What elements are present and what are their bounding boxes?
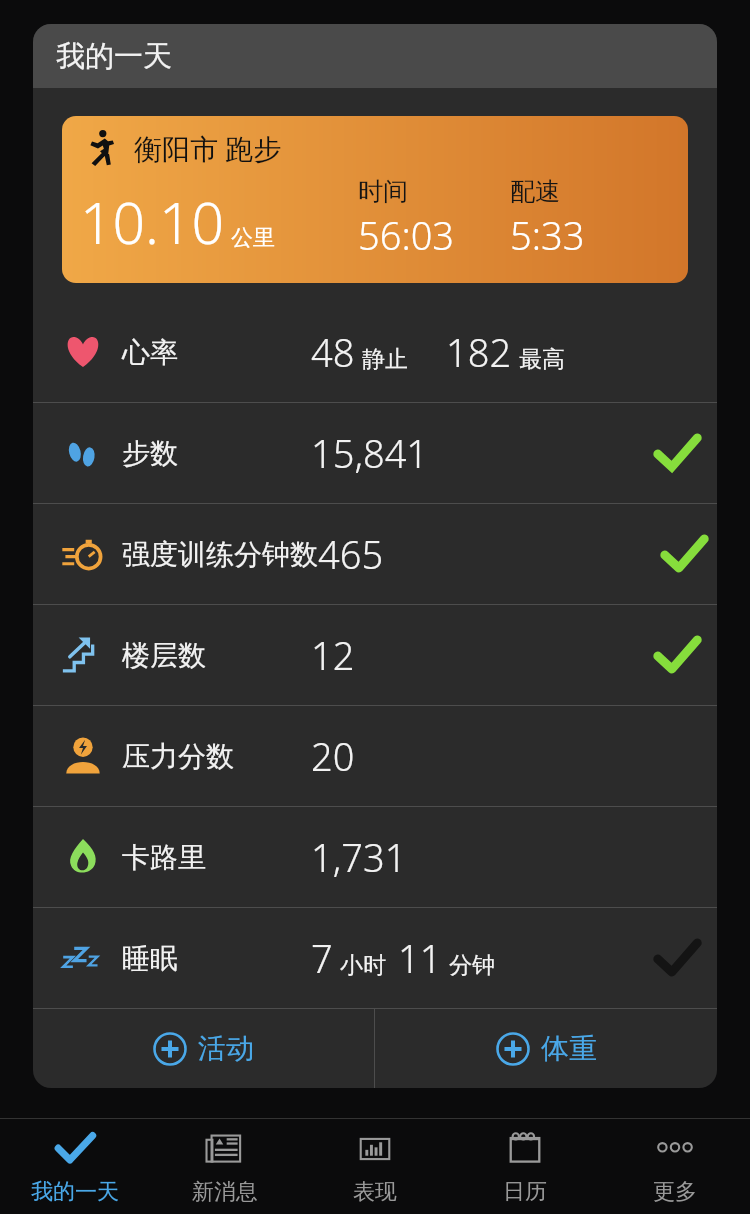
staticText: 我的一天 bbox=[31, 1178, 119, 1206]
button[interactable]: 体重 bbox=[375, 1009, 717, 1088]
button[interactable]: 表现 bbox=[300, 1119, 450, 1214]
button[interactable]: 心率 bbox=[33, 302, 717, 402]
staticText: 56:03 bbox=[358, 209, 455, 261]
staticText: 衡阳市 跑步 bbox=[134, 129, 282, 167]
staticText: 睡眠 bbox=[122, 941, 178, 976]
button[interactable]: 卡路里 bbox=[33, 807, 717, 907]
staticText: 配速 bbox=[510, 176, 560, 207]
staticText: 静止 bbox=[362, 345, 408, 374]
button[interactable]: 楼层数 bbox=[33, 605, 717, 705]
button[interactable]: 衡阳市 跑步 bbox=[62, 116, 688, 283]
staticText: 10.10 bbox=[80, 183, 225, 261]
staticText: 新消息 bbox=[192, 1178, 258, 1206]
staticText: 日历 bbox=[503, 1178, 547, 1206]
button[interactable]: 我的一天 bbox=[0, 1119, 150, 1214]
staticText: 7 bbox=[311, 932, 333, 984]
staticText: 时间 bbox=[358, 176, 408, 207]
button[interactable]: 更多 bbox=[600, 1119, 750, 1214]
button[interactable]: 步数 bbox=[33, 403, 717, 503]
staticText: 活动 bbox=[198, 1031, 254, 1066]
button[interactable]: 新消息 bbox=[150, 1119, 300, 1214]
button[interactable]: 睡眠 bbox=[33, 908, 717, 1008]
staticText: 465 bbox=[318, 528, 384, 580]
staticText: 20 bbox=[311, 730, 355, 782]
staticText: 我的一天 bbox=[56, 38, 172, 75]
staticText: 182 bbox=[446, 326, 512, 378]
staticText: 心率 bbox=[122, 335, 178, 370]
staticText: 最高 bbox=[519, 345, 565, 374]
button[interactable]: 日历 bbox=[450, 1119, 600, 1214]
staticText: 强度训练分钟数 bbox=[122, 537, 318, 572]
staticText: 11 bbox=[398, 932, 442, 984]
staticText: 步数 bbox=[122, 436, 178, 471]
staticText: 5:33 bbox=[510, 209, 585, 261]
staticText: 公里 bbox=[231, 224, 275, 252]
staticText: 体重 bbox=[541, 1031, 597, 1066]
staticText: 卡路里 bbox=[122, 840, 206, 875]
staticText: 小时 bbox=[340, 951, 386, 980]
staticText: 15,841 bbox=[311, 427, 429, 479]
button[interactable]: 强度训练分钟数 bbox=[33, 504, 717, 604]
staticText: 楼层数 bbox=[122, 638, 206, 673]
staticText: 12 bbox=[311, 629, 355, 681]
staticText: 分钟 bbox=[449, 951, 495, 980]
button[interactable]: 压力分数 bbox=[33, 706, 717, 806]
staticText: 48 bbox=[311, 326, 355, 378]
button[interactable]: 活动 bbox=[33, 1009, 374, 1088]
staticText: 表现 bbox=[353, 1178, 397, 1206]
staticText: 压力分数 bbox=[122, 739, 234, 774]
staticText: 更多 bbox=[653, 1178, 697, 1206]
staticText: 1,731 bbox=[311, 831, 407, 883]
